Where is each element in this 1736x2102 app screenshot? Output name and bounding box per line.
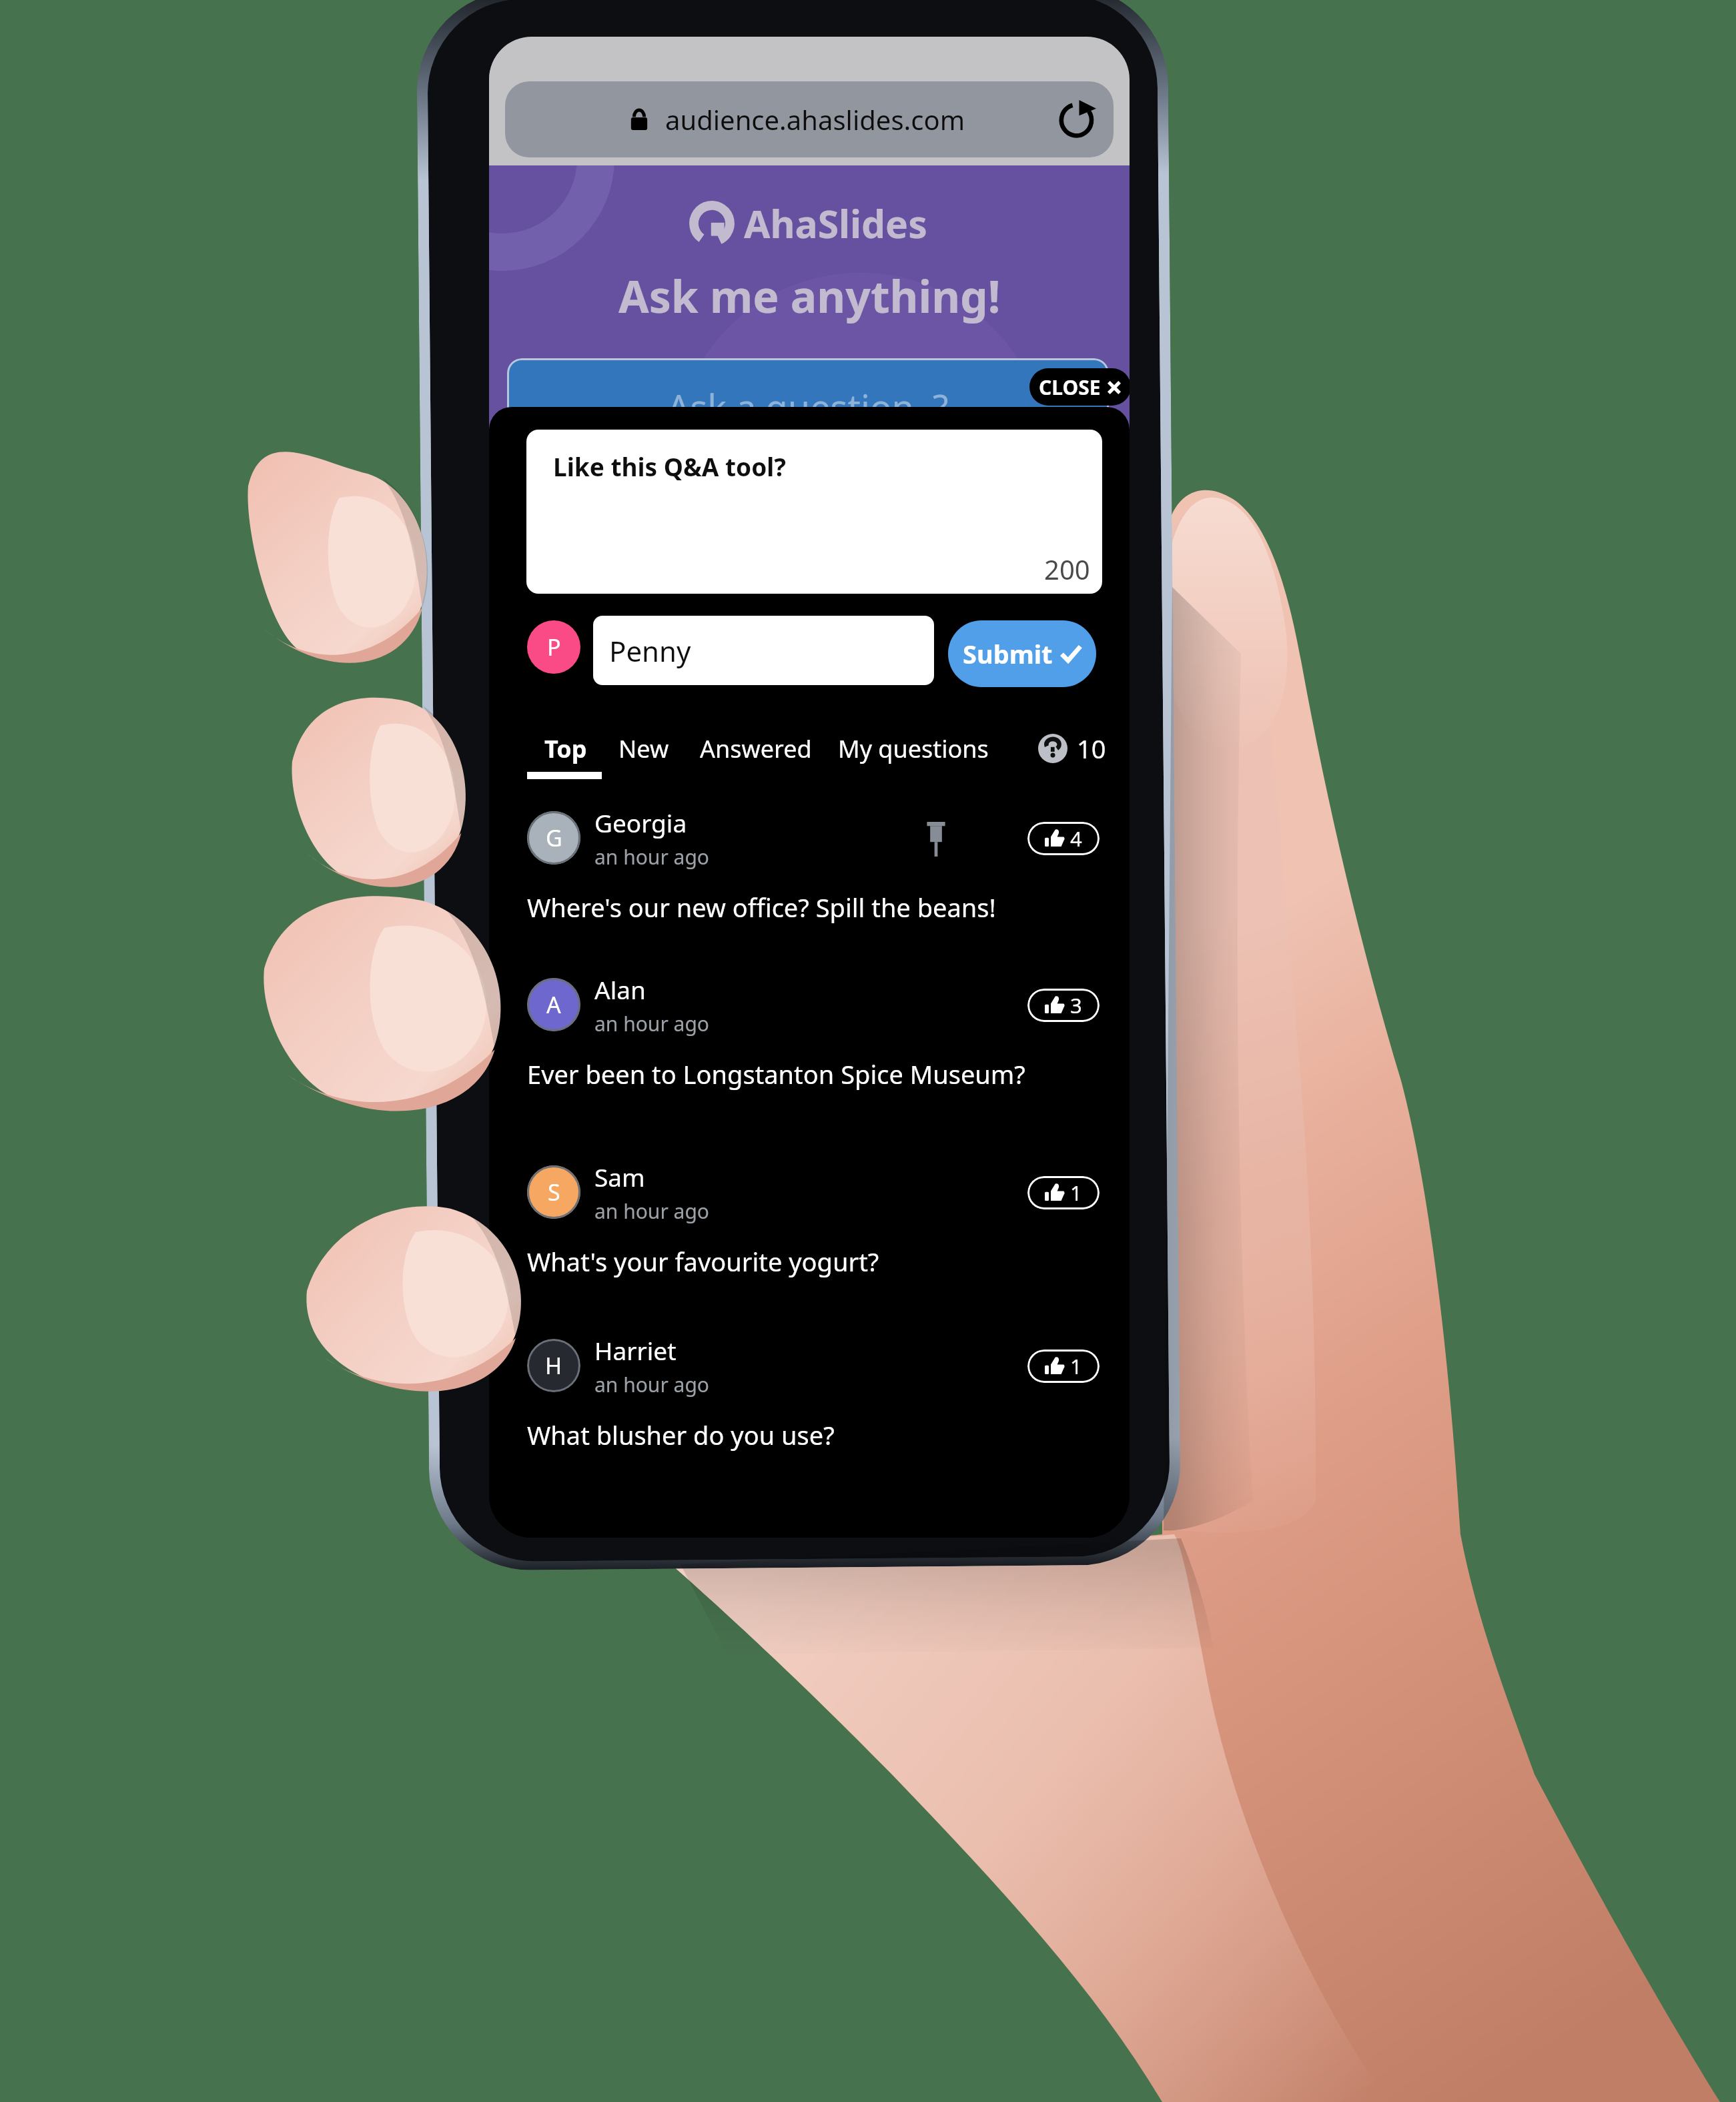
button[interactable]: Submit — [948, 620, 1096, 687]
staticText: an hour ago — [594, 843, 710, 871]
staticText: Ask me anything! — [618, 266, 1001, 326]
button[interactable]: New — [618, 732, 669, 765]
button[interactable]: 10 — [1038, 731, 1106, 766]
button[interactable]: 3 — [1027, 989, 1100, 1022]
button[interactable]: 4 — [1027, 822, 1100, 855]
staticText: P — [547, 632, 561, 662]
other: Reload page — [1057, 100, 1096, 139]
staticText: What blusher do you use? — [527, 1418, 835, 1452]
staticText: an hour ago — [594, 1010, 710, 1037]
staticText: G — [546, 823, 562, 853]
staticText: Alan — [594, 973, 646, 1006]
staticText: 3 — [1070, 991, 1082, 1019]
button[interactable]: Answered — [700, 732, 812, 765]
staticText: Ask a question ? — [667, 382, 949, 432]
staticText: audience.ahaslides.com — [665, 101, 965, 137]
staticText: Penny — [609, 632, 691, 670]
staticText: 1 — [1070, 1352, 1082, 1380]
button[interactable]: 1 — [1027, 1350, 1100, 1383]
button[interactable]: audience.ahaslides.com — [505, 81, 1114, 157]
staticText: What's your favourite yogurt? — [527, 1244, 879, 1279]
button[interactable]: Ask a question ? — [507, 358, 1109, 457]
staticText: Where's our new office? Spill the beans! — [527, 890, 996, 925]
staticText: 200 — [1044, 551, 1090, 587]
staticText: 10 — [1077, 731, 1106, 766]
staticText: AhaSlides — [744, 197, 927, 249]
staticText: an hour ago — [594, 1197, 710, 1225]
staticText: Georgia — [594, 806, 687, 839]
staticText: Harriet — [594, 1334, 677, 1367]
staticText: an hour ago — [594, 1371, 710, 1398]
staticText: A — [546, 989, 561, 1020]
staticText: Submit — [963, 636, 1053, 671]
staticText: CLOSE — [1039, 374, 1101, 401]
button[interactable]: My questions — [838, 732, 989, 765]
staticText: Like this Q&A tool? — [553, 450, 786, 483]
staticText: H — [545, 1350, 562, 1381]
staticText: 1 — [1070, 1179, 1082, 1207]
button[interactable]: Penny — [593, 616, 934, 685]
other: Pinned question — [925, 822, 947, 857]
staticText: Ever been to Longstanton Spice Museum? — [527, 1057, 1025, 1091]
staticText: 4 — [1070, 825, 1082, 853]
staticText: Sam — [594, 1160, 645, 1193]
button[interactable]: CLOSE — [1029, 368, 1130, 406]
button[interactable]: Like this Q&A tool? — [526, 430, 1102, 594]
button[interactable]: P — [527, 620, 580, 674]
button[interactable]: 1 — [1027, 1176, 1100, 1209]
staticText: S — [548, 1177, 560, 1207]
button[interactable]: Top — [544, 732, 587, 765]
